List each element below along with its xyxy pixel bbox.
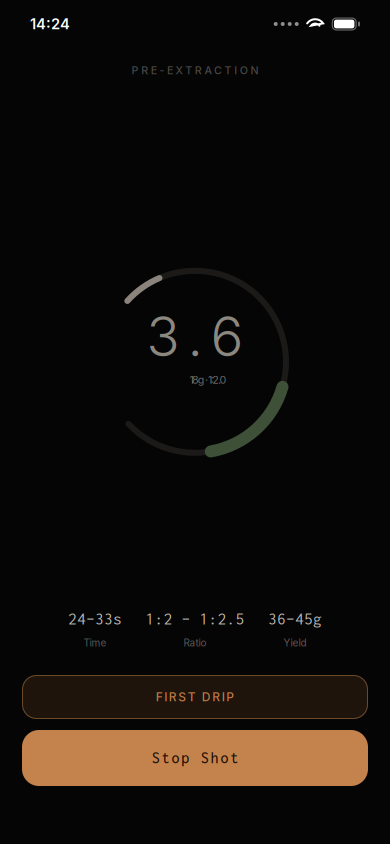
staticText: Ratio (183, 637, 206, 649)
staticText: Stop Shot (152, 750, 238, 766)
staticText: 18g · 1:2.0 (189, 373, 226, 386)
staticText: Yield (283, 637, 306, 649)
button[interactable]: FIRST DRIP (22, 675, 368, 719)
staticText: Time (83, 637, 106, 649)
staticText: PRE-EXTRACTION (132, 64, 258, 77)
staticText: FIRST DRIP (156, 690, 234, 704)
button[interactable]: Stop Shot (22, 730, 368, 786)
staticText: 1:2 – 1:2.5 (145, 610, 244, 628)
staticText: 3.6 (146, 303, 243, 369)
staticText: 24–33s (68, 610, 122, 628)
staticText: 14:24 (30, 15, 70, 33)
staticText: 36–45g (268, 610, 322, 628)
